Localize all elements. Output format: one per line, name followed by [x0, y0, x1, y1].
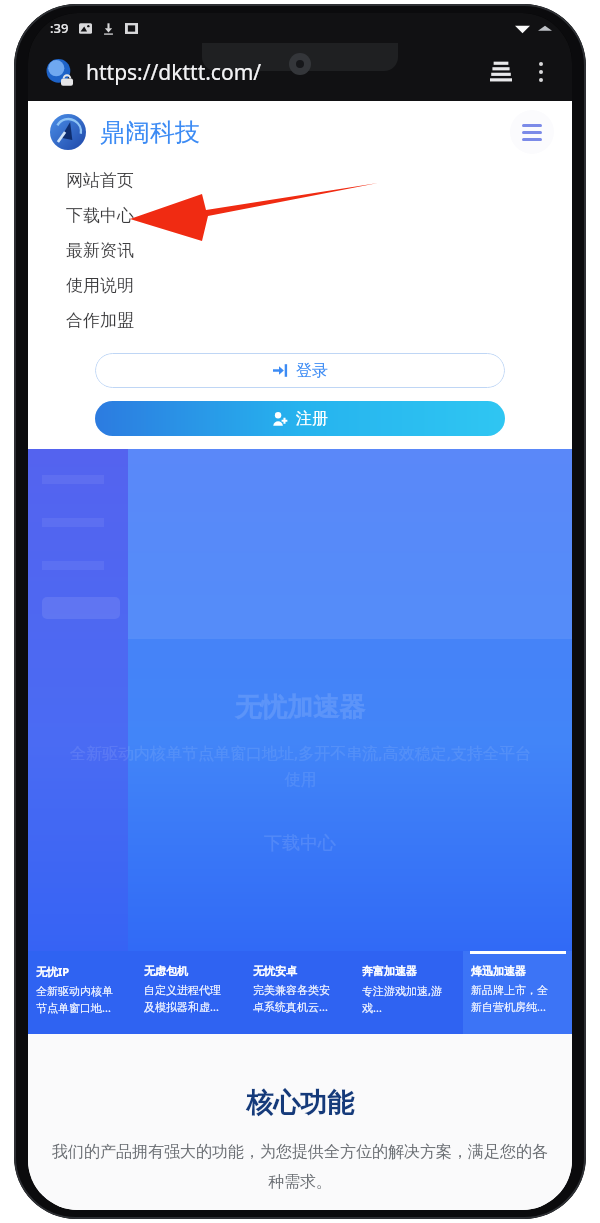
staticText: 全新驱动内核单节点单窗口地址,多开不串流,高效稳定,支持全平台使用: [67, 742, 534, 790]
button[interactable]: 网站首页: [66, 163, 572, 198]
button[interactable]: 注册: [95, 401, 505, 436]
staticText: 节点单窗口地...: [36, 1000, 111, 1015]
staticText: 无忧加速器: [235, 691, 365, 724]
staticText: 卓系统真机云...: [253, 999, 328, 1014]
button[interactable]: 烽迅加速器: [463, 951, 572, 1034]
button[interactable]: Menu: [510, 110, 554, 154]
staticText: 奔富加速器: [362, 964, 417, 978]
staticText: 烽迅加速器: [471, 964, 526, 978]
staticText: 登录: [296, 361, 328, 381]
staticText: 新自营机房纯...: [471, 999, 546, 1014]
button[interactable]: Tabs: [484, 55, 518, 89]
staticText: 全新驱动内核单: [36, 984, 113, 998]
staticText: 合作加盟: [66, 310, 134, 331]
staticText: 专注游戏加速,游: [362, 983, 442, 998]
staticText: 下载中心: [66, 205, 134, 226]
staticText: 注册: [296, 409, 328, 429]
staticText: 戏...: [362, 1000, 382, 1015]
staticText: 自定义进程代理: [144, 983, 221, 997]
button[interactable]: 无忧IP: [28, 951, 136, 1034]
staticText: 无忧安卓: [253, 964, 297, 978]
staticText: 无虑包机: [144, 964, 188, 978]
button[interactable]: 登录: [95, 353, 505, 388]
staticText: 鼎阔科技: [100, 117, 200, 148]
button[interactable]: 使用说明: [66, 268, 572, 303]
staticText: 完美兼容各类安: [253, 983, 330, 997]
staticText: 我们的产品拥有强大的功能，为您提供全方位的解决方案，满足您的各种需求。: [52, 1142, 548, 1192]
staticText: 新品牌上市，全: [471, 983, 548, 997]
staticText: 核心功能: [246, 1086, 354, 1120]
staticText: 下载中心: [264, 832, 336, 855]
button[interactable]: 下载中心: [66, 198, 572, 233]
staticText: 使用说明: [66, 275, 134, 296]
staticText: 及模拟器和虚...: [144, 999, 219, 1014]
staticText: :39: [50, 19, 69, 37]
staticText: 最新资讯: [66, 240, 134, 261]
button[interactable]: 无虑包机: [136, 951, 245, 1034]
button[interactable]: 合作加盟: [66, 303, 572, 338]
staticText: https://dkttt.com/: [86, 58, 262, 87]
button[interactable]: 奔富加速器: [354, 951, 463, 1034]
staticText: 网站首页: [66, 170, 134, 191]
button[interactable]: 最新资讯: [66, 233, 572, 268]
button[interactable]: More options: [526, 57, 556, 87]
button[interactable]: 无忧安卓: [245, 951, 354, 1034]
staticText: 无忧IP: [36, 964, 70, 979]
